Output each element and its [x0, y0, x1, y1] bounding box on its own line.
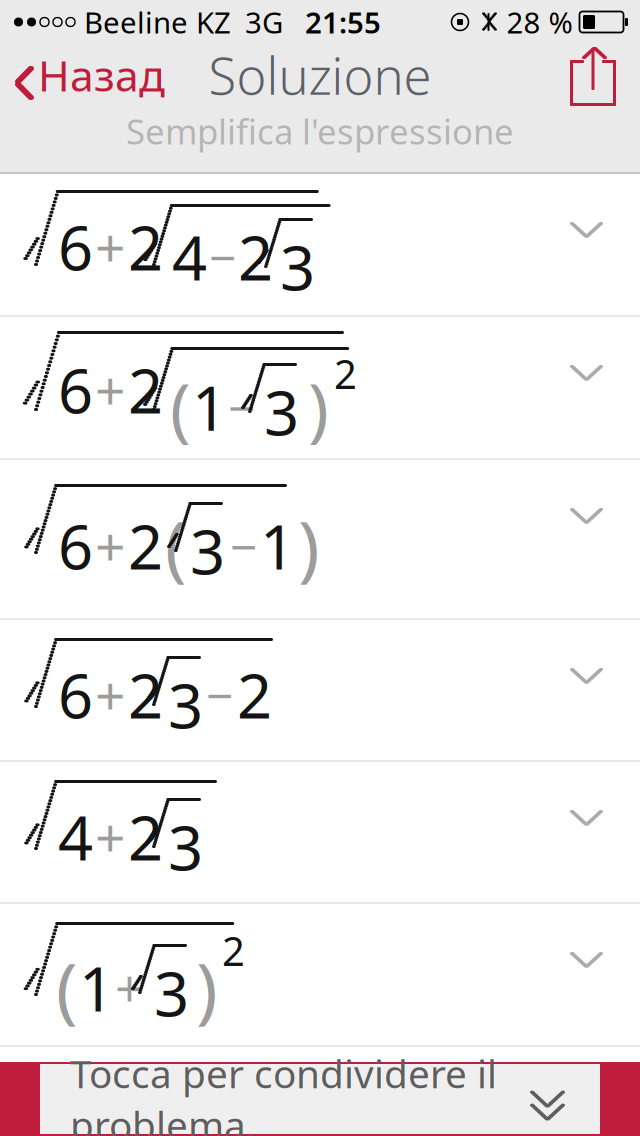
staticText: +: [95, 801, 126, 872]
staticText: 3G: [245, 2, 283, 41]
staticText: 1: [260, 505, 295, 586]
staticText: 2: [128, 206, 163, 287]
staticText: Tocca per condividere il problema.: [70, 1048, 497, 1136]
staticText: +: [95, 354, 126, 425]
staticText: +: [115, 954, 144, 1021]
staticText: 3: [168, 806, 203, 887]
staticText: 6: [58, 654, 93, 735]
staticText: ): [308, 361, 329, 453]
staticText: 4: [58, 796, 93, 877]
button[interactable]: Tocca per condividere il problema.: [0, 1062, 640, 1136]
staticText: ): [298, 498, 320, 594]
button[interactable]: (: [0, 904, 640, 1047]
button[interactable]: 4: [0, 762, 640, 904]
staticText: Beeline KZ: [84, 2, 231, 41]
staticText: −: [228, 375, 255, 439]
staticText: (: [56, 940, 78, 1036]
staticText: 2: [334, 347, 357, 400]
staticText: 2: [238, 216, 273, 297]
staticText: 3: [280, 226, 315, 307]
staticText: 6: [58, 505, 93, 586]
staticText: 1: [79, 947, 114, 1028]
staticText: 2: [237, 654, 272, 735]
staticText: Semplifica l'espressione: [126, 108, 514, 154]
staticText: Назад: [38, 47, 165, 103]
staticText: 2: [128, 349, 163, 430]
staticText: −: [206, 663, 233, 727]
staticText: ): [196, 940, 218, 1036]
staticText: 3: [264, 371, 299, 452]
staticText: 2: [222, 924, 245, 977]
staticText: (: [170, 361, 191, 453]
staticText: 3: [168, 664, 203, 745]
staticText: 28 %: [506, 2, 572, 41]
staticText: 1: [192, 366, 227, 448]
staticText: +: [95, 659, 126, 730]
button[interactable]: 6: [0, 620, 640, 762]
staticText: 2: [128, 654, 163, 735]
button[interactable]: 6: [0, 174, 640, 317]
staticText: 21:55: [305, 2, 381, 41]
staticText: 2: [128, 505, 163, 586]
staticText: (: [165, 498, 187, 594]
staticText: 4: [172, 216, 207, 297]
button[interactable]: 6: [0, 460, 640, 620]
staticText: 3: [190, 510, 225, 591]
staticText: 6: [58, 349, 93, 430]
staticText: +: [95, 211, 126, 282]
staticText: 3: [154, 952, 189, 1033]
staticText: −: [230, 514, 257, 578]
staticText: +: [95, 510, 126, 581]
staticText: 6: [58, 206, 93, 287]
staticText: −: [209, 225, 236, 289]
staticText: 2: [128, 796, 163, 877]
button[interactable]: Share: [570, 42, 616, 108]
button[interactable]: Назад: [0, 39, 165, 111]
button[interactable]: 6: [0, 317, 640, 460]
staticText: Soluzione: [208, 41, 431, 109]
